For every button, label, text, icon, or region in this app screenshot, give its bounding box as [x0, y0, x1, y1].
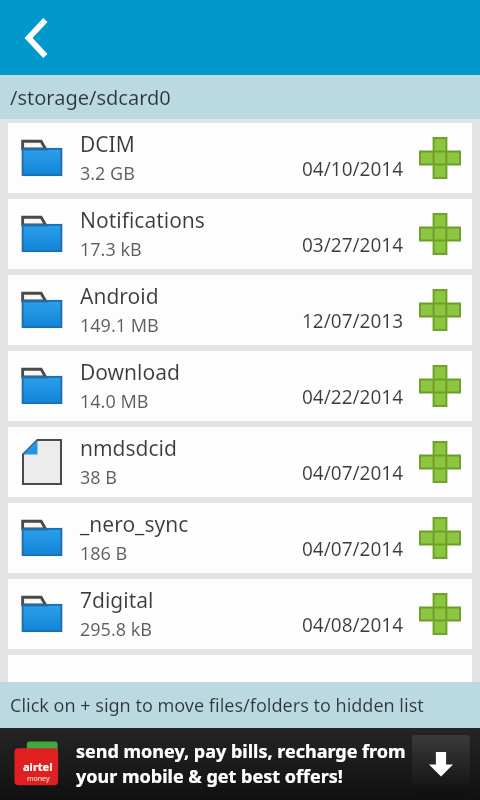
staticText: 149.1 MB — [80, 313, 159, 338]
button[interactable]: Notifications — [8, 199, 472, 269]
staticText: Notifications — [80, 206, 205, 235]
button[interactable]: 7digital — [8, 579, 472, 649]
staticText: Click on + sign to move files/folders to… — [10, 693, 424, 718]
staticText: 04/08/2014 — [302, 612, 404, 638]
staticText: nmdsdcid — [80, 434, 177, 463]
staticText: 04/10/2014 — [302, 156, 404, 182]
button[interactable]: _nero_sync — [8, 503, 472, 573]
button[interactable]: Hide Download — [414, 360, 466, 412]
button[interactable]: Hide 7digital — [414, 588, 466, 640]
staticText: 295.8 kB — [80, 617, 152, 642]
staticText: 04/22/2014 — [302, 384, 404, 410]
staticText: 04/07/2014 — [302, 536, 404, 562]
button[interactable]: Hide _nero_sync — [414, 512, 466, 564]
staticText: your mobile & get best offers! — [76, 764, 343, 789]
staticText: 03/27/2014 — [302, 232, 404, 258]
staticText: 12/07/2013 — [302, 308, 404, 334]
button[interactable]: Download — [412, 735, 470, 793]
button[interactable]: Hide DCIM — [414, 132, 466, 184]
button[interactable]: Hide Notifications — [414, 208, 466, 260]
button[interactable]: nmdsdcid — [8, 427, 472, 497]
staticText: Download — [80, 358, 180, 387]
staticText: 04/07/2014 — [302, 460, 404, 486]
staticText: DCIM — [80, 130, 135, 159]
staticText: 38 B — [80, 465, 117, 490]
staticText: 7digital — [80, 586, 154, 615]
staticText: /storage/sdcard0 — [10, 84, 171, 111]
staticText: Android — [80, 282, 159, 311]
staticText: airtel — [23, 759, 53, 774]
staticText: _nero_sync — [80, 510, 189, 539]
staticText: 3.2 GB — [80, 161, 135, 186]
button[interactable]: Back — [14, 10, 70, 66]
staticText: 17.3 kB — [80, 237, 142, 262]
staticText: 186 B — [80, 541, 128, 566]
button[interactable]: DCIM — [8, 123, 472, 193]
button[interactable]: Hide Android — [414, 284, 466, 336]
staticText: money — [27, 774, 50, 784]
button[interactable]: Hide nmdsdcid — [414, 436, 466, 488]
button[interactable]: /storage/sdcard0 — [0, 75, 480, 119]
button[interactable]: Android — [8, 275, 472, 345]
staticText: 14.0 MB — [80, 389, 149, 414]
button[interactable]: Download — [8, 351, 472, 421]
button[interactable]: airtel — [0, 728, 480, 800]
staticText: send money, pay bills, recharge from — [76, 739, 406, 764]
